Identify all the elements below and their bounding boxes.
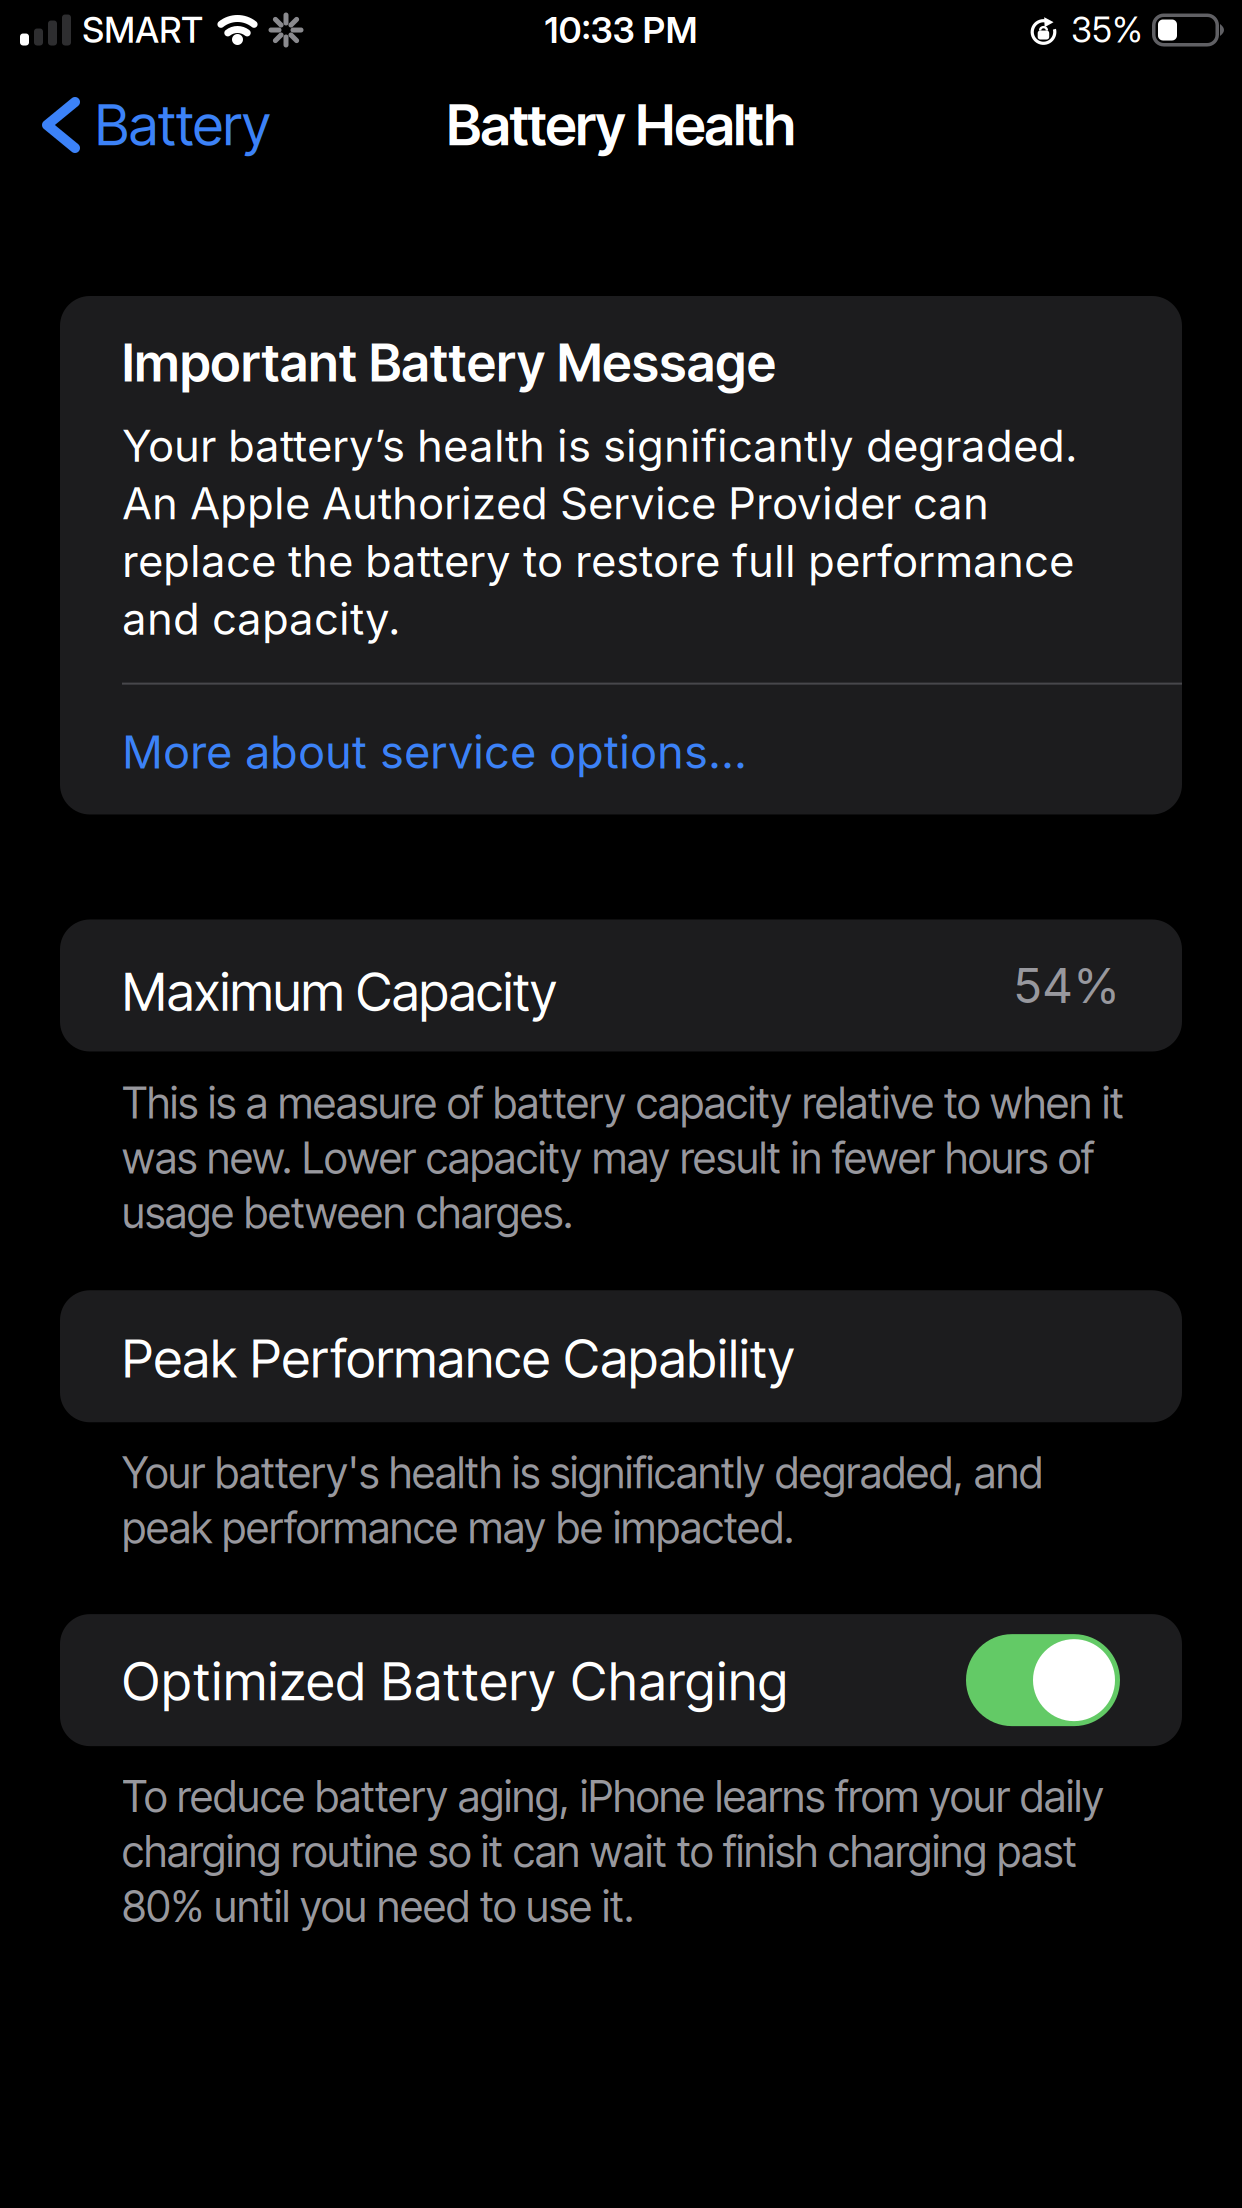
staticText: SMART [82,9,203,51]
staticText: 10:33 PM [544,8,697,52]
staticText: More about service options... [122,725,747,779]
staticText: This is a measure of battery capacity re… [122,1075,1124,1240]
staticText: Your battery’s health is significantly d… [122,417,1078,648]
staticText: To reduce battery aging, iPhone learns f… [122,1769,1104,1934]
button[interactable]: More about service options... [122,685,1120,814]
staticText: Battery Health [446,91,795,159]
staticText: Optimized Battery Charging [122,1649,788,1713]
button[interactable]: Optimized Battery Charging [966,1634,1120,1726]
staticText: Maximum Capacity [122,960,557,1023]
button[interactable]: Back [0,91,271,159]
staticText: Your battery's health is significantly d… [122,1445,1043,1555]
staticText: Important Battery Message [122,331,776,394]
staticText: 54% [1013,956,1120,1014]
staticText: Peak Performance Capability [122,1326,795,1390]
staticText: Battery [95,91,271,159]
staticText: 35% [1071,9,1143,51]
